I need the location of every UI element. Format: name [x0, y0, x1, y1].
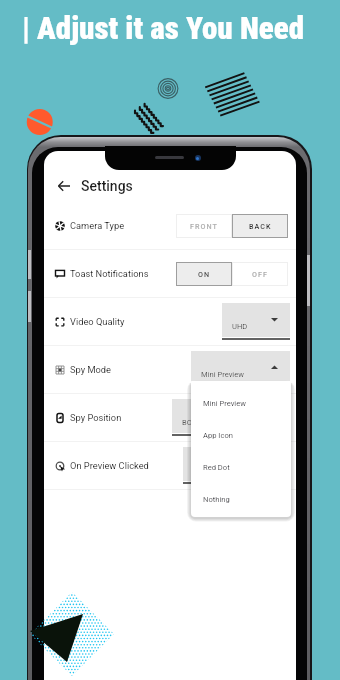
- button[interactable]: Red Dot: [191, 451, 291, 483]
- button[interactable]: FRONT: [176, 214, 232, 238]
- staticText: Open App: [193, 466, 227, 475]
- staticText: Settings: [81, 178, 133, 194]
- button[interactable]: Spy Position: [44, 394, 296, 441]
- button[interactable]: Toast Notifications: [44, 250, 296, 297]
- button[interactable]: On Preview Clicked: [44, 442, 296, 489]
- button[interactable]: UHD: [222, 303, 290, 340]
- button[interactable]: Mini Preview: [191, 387, 291, 419]
- button[interactable]: Video Quality: [44, 298, 296, 345]
- button[interactable]: Nothing: [191, 483, 291, 515]
- staticText: BOTTOM RIGHT: [182, 418, 237, 427]
- staticText: FRONT: [190, 222, 218, 230]
- staticText: Red Dot: [203, 463, 230, 472]
- button[interactable]: ON: [176, 262, 232, 286]
- button[interactable]: Camera Type: [44, 202, 296, 249]
- button[interactable]: Open App: [183, 447, 290, 484]
- staticText: ON: [198, 270, 211, 278]
- staticText: BACK: [249, 222, 272, 230]
- staticText: On Preview Clicked: [70, 460, 149, 471]
- staticText: Nothing: [203, 495, 230, 504]
- button[interactable]: BOTTOM RIGHT: [172, 399, 290, 436]
- staticText: UHD: [232, 322, 248, 331]
- staticText: Mini Preview: [201, 370, 244, 379]
- staticText: Camera Type: [70, 220, 125, 231]
- staticText: Toast Notifications: [70, 268, 149, 279]
- button[interactable]: Spy Mode: [44, 346, 296, 393]
- button[interactable]: Mini Preview: [191, 351, 290, 388]
- staticText: | Adjust it as You Need: [22, 10, 305, 46]
- button[interactable]: BACK: [232, 214, 288, 238]
- staticText: Spy Position: [70, 412, 122, 423]
- staticText: Spy Mode: [70, 364, 111, 375]
- button[interactable]: Back: [54, 176, 74, 196]
- staticText: Mini Preview: [203, 399, 246, 408]
- staticText: App Icon: [203, 431, 233, 440]
- button[interactable]: OFF: [232, 262, 288, 286]
- staticText: Video Quality: [70, 316, 125, 327]
- button[interactable]: App Icon: [191, 419, 291, 451]
- staticText: OFF: [252, 270, 268, 278]
